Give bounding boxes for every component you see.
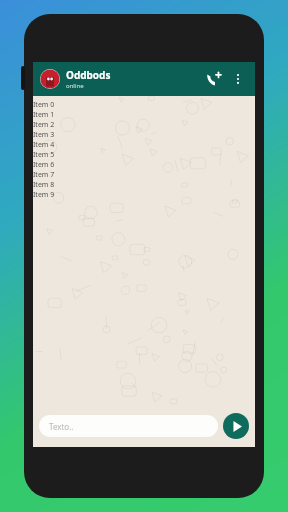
staticText: Item 9 <box>33 190 55 200</box>
staticText: Item 3 <box>33 130 55 140</box>
staticText: Item 6 <box>33 160 55 170</box>
button[interactable]: Texto.. <box>39 415 218 437</box>
staticText: Item 4 <box>33 140 55 150</box>
staticText: Item 8 <box>33 180 55 190</box>
button[interactable]: More options <box>228 69 248 89</box>
button[interactable]: Add call <box>202 67 226 91</box>
staticText: Texto.. <box>49 421 74 432</box>
staticText: online <box>66 82 84 90</box>
staticText: Item 0 <box>33 100 55 110</box>
staticText: Item 1 <box>33 110 55 120</box>
staticText: Item 2 <box>33 120 55 130</box>
button[interactable]: Contact photo <box>40 69 60 89</box>
staticText: Item 5 <box>33 150 55 160</box>
staticText: Oddbods <box>66 68 111 82</box>
button[interactable]: Send <box>223 413 249 439</box>
staticText: Item 7 <box>33 170 55 180</box>
